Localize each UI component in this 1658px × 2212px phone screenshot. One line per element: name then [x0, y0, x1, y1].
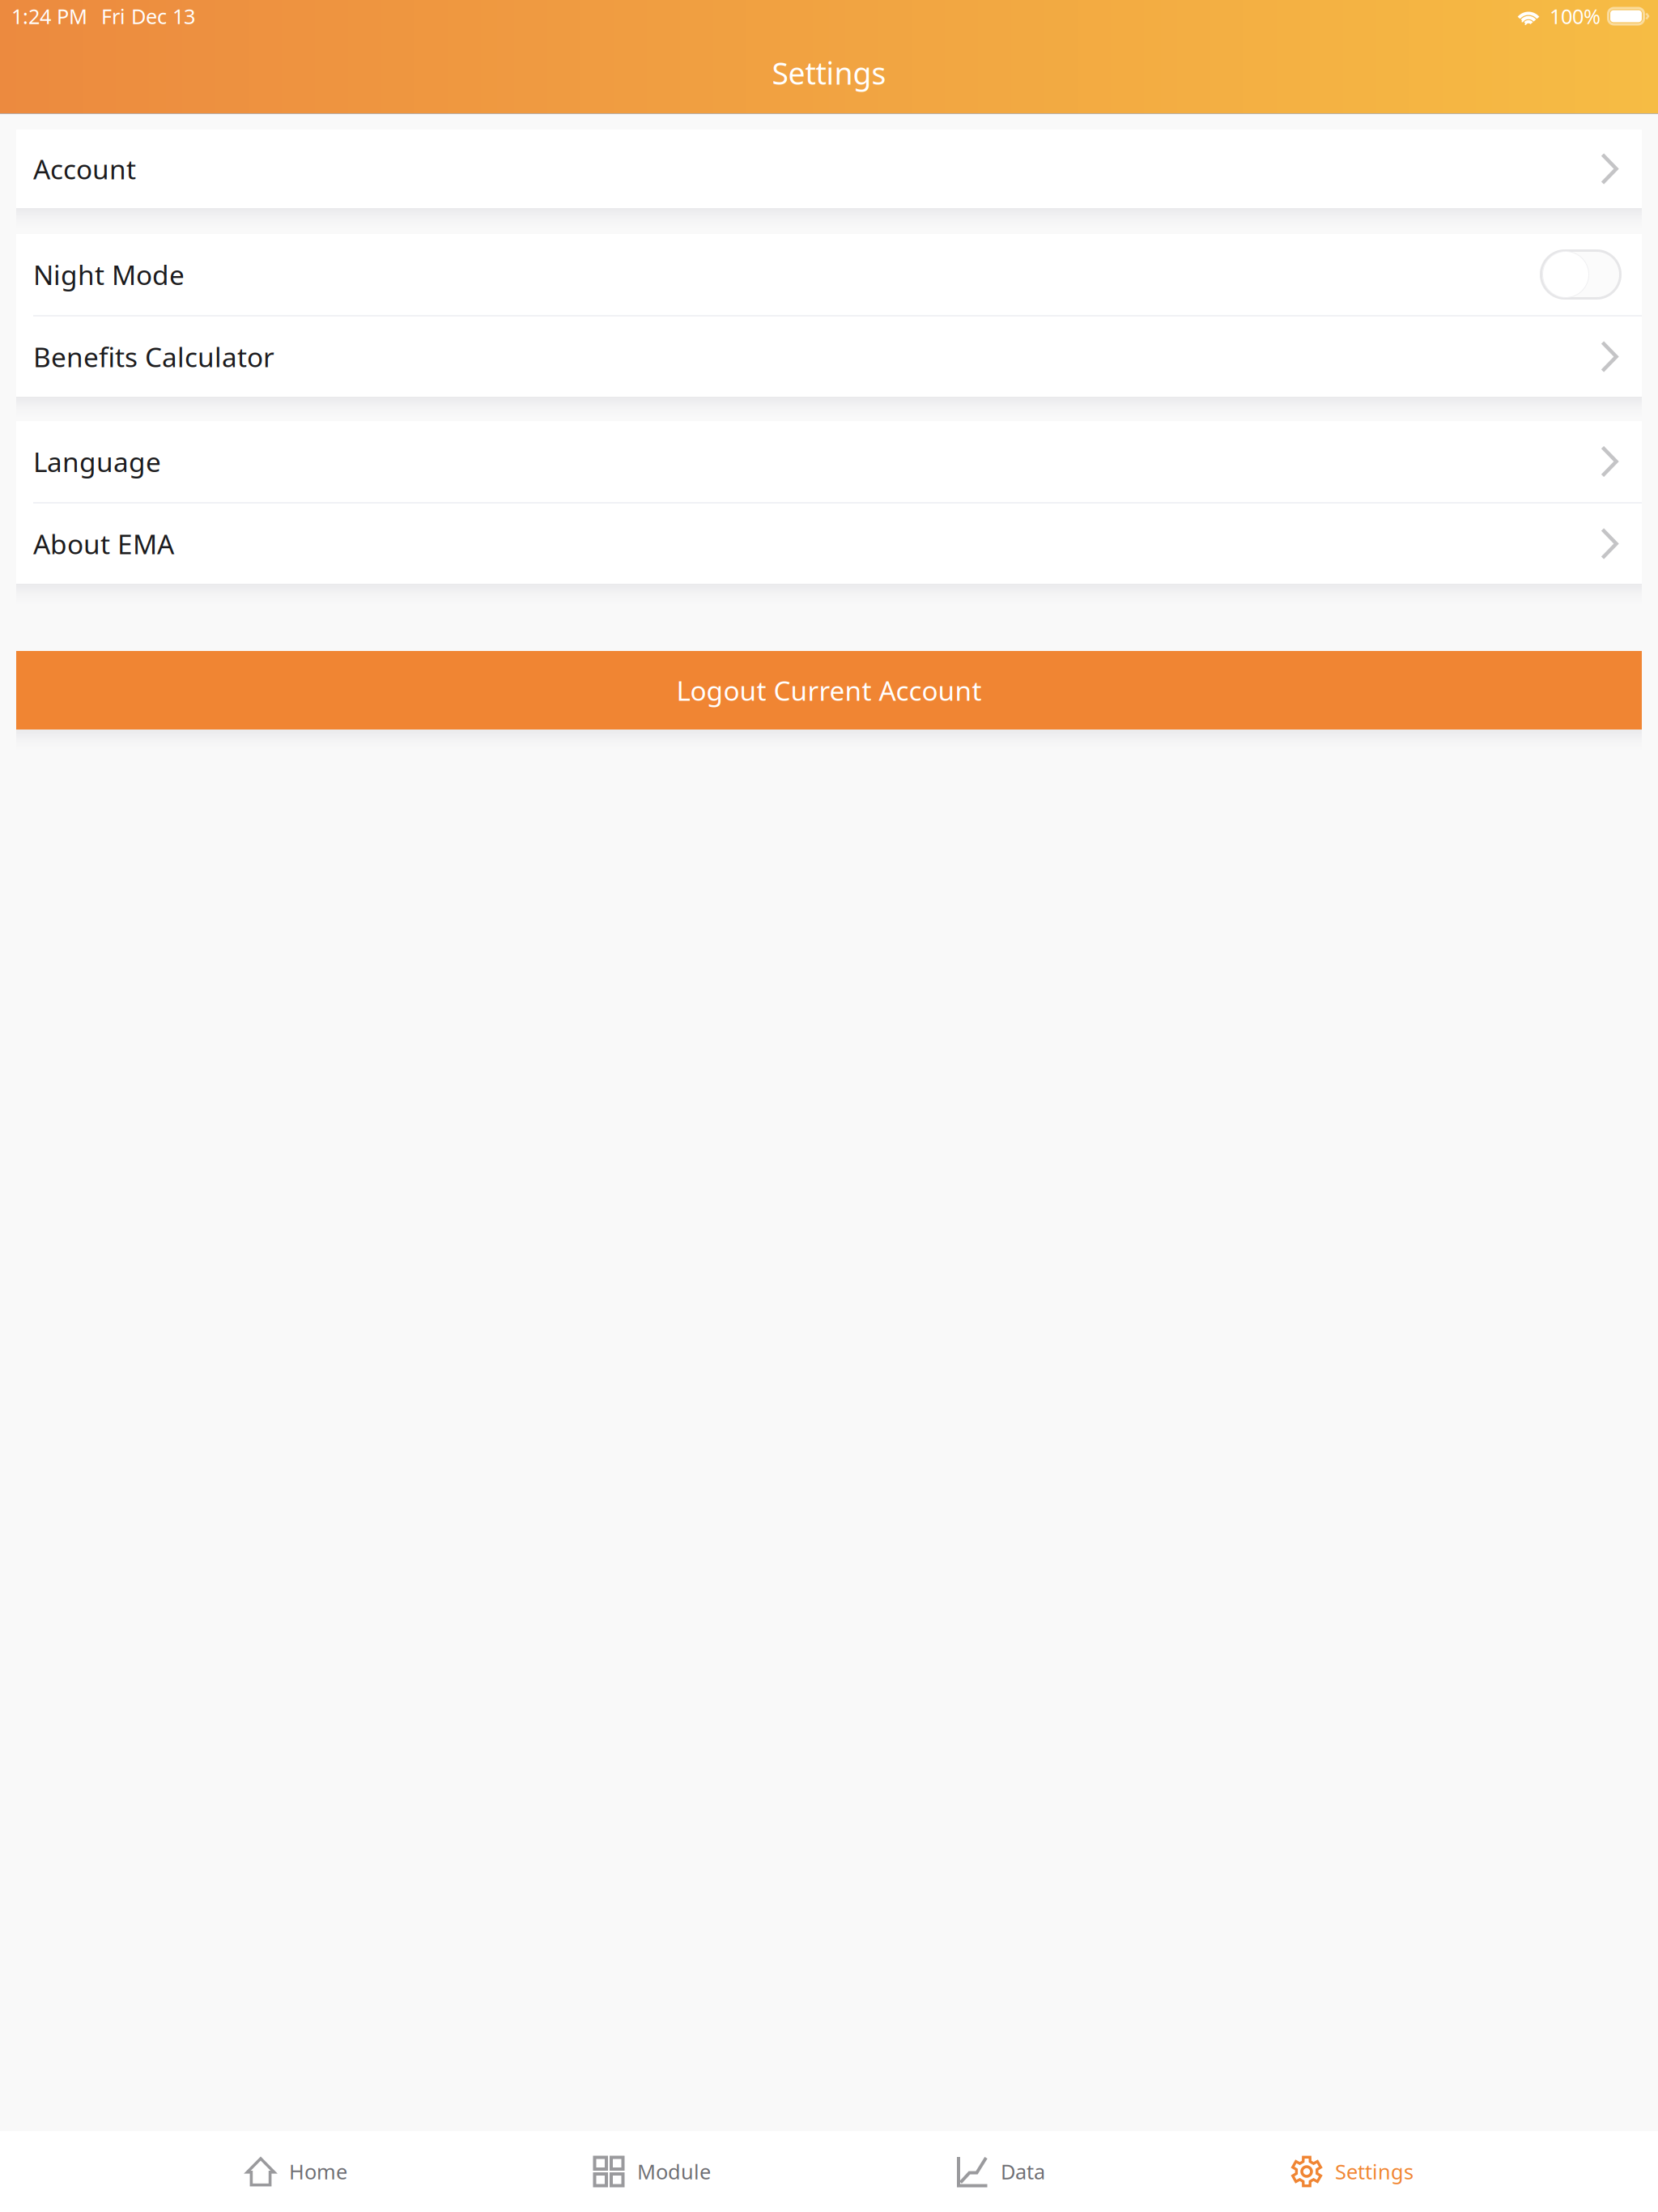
staticText: Settings: [1335, 2158, 1414, 2185]
staticText: Module: [637, 2158, 711, 2185]
staticText: Data: [1001, 2158, 1045, 2185]
staticText: Logout Current Account: [676, 672, 982, 708]
button[interactable]: About EMA: [16, 504, 1642, 584]
button[interactable]: Module: [593, 2131, 711, 2212]
button[interactable]: Logout Current Account: [16, 651, 1642, 730]
staticText: Account: [33, 151, 136, 187]
staticText: 1:24 PM: [11, 3, 87, 30]
button[interactable]: Night Mode toggle: [1540, 249, 1618, 300]
staticText: Night Mode: [33, 257, 185, 292]
button[interactable]: Language: [16, 421, 1642, 502]
button[interactable]: Benefits Calculator: [16, 317, 1642, 397]
staticText: About EMA: [33, 526, 174, 562]
staticText: Language: [33, 444, 161, 479]
button[interactable]: Night Mode: [16, 234, 1642, 315]
staticText: 100%: [1550, 3, 1601, 30]
staticText: Home: [289, 2158, 347, 2185]
button[interactable]: Data: [956, 2131, 1045, 2212]
staticText: Settings: [772, 53, 886, 93]
button[interactable]: Account: [16, 130, 1642, 208]
button[interactable]: Home: [244, 2131, 347, 2212]
staticText: Benefits Calculator: [33, 339, 274, 375]
button[interactable]: Settings: [1290, 2131, 1414, 2212]
staticText: Fri Dec 13: [101, 3, 195, 30]
